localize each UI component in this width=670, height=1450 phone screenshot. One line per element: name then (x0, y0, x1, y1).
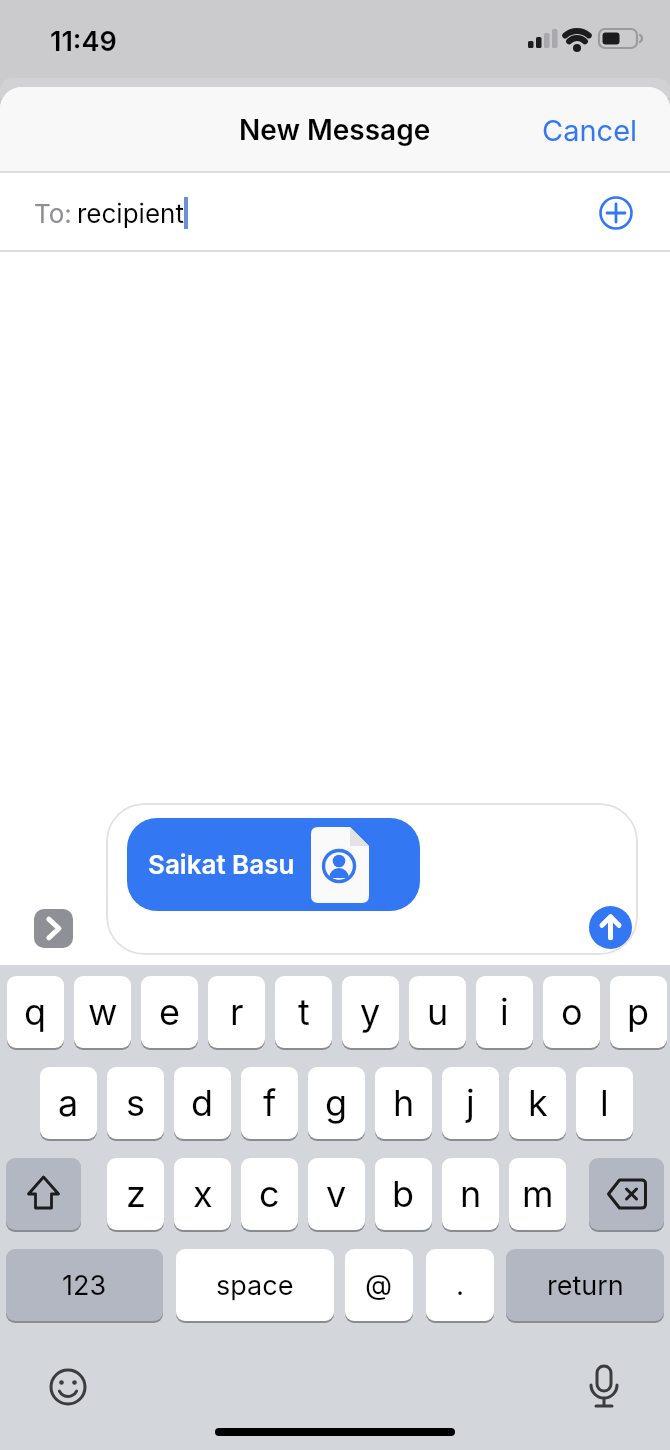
button[interactable]: w (74, 976, 131, 1048)
button[interactable]: y (342, 976, 399, 1048)
button[interactable]: h (375, 1067, 432, 1139)
button[interactable]: s (107, 1067, 164, 1139)
button[interactable]: z (107, 1158, 164, 1230)
staticText: y (360, 990, 381, 1034)
button[interactable]: space (176, 1249, 334, 1321)
staticText: 11:49 (50, 25, 117, 58)
staticText: s (126, 1081, 146, 1125)
staticText: l (600, 1081, 609, 1125)
staticText: space (216, 1269, 294, 1302)
staticText: a (58, 1081, 79, 1125)
button[interactable]: l (576, 1067, 633, 1139)
staticText: @ (365, 1268, 393, 1302)
staticText: 123 (62, 1269, 107, 1302)
button[interactable]: b (375, 1158, 432, 1230)
staticText: h (393, 1081, 415, 1125)
button[interactable]: d (174, 1067, 231, 1139)
button[interactable]: g (308, 1067, 365, 1139)
button[interactable]: t (275, 976, 332, 1048)
staticText: n (460, 1172, 482, 1216)
staticText: t (298, 990, 310, 1034)
button[interactable]: m (509, 1158, 566, 1230)
button[interactable]: k (509, 1067, 566, 1139)
staticText: f (263, 1081, 277, 1125)
staticText: . (456, 1268, 465, 1302)
button[interactable]: x (174, 1158, 231, 1230)
staticText: d (191, 1081, 214, 1125)
button[interactable]: n (442, 1158, 499, 1230)
button[interactable]: q (7, 976, 64, 1048)
button[interactable] (34, 909, 73, 948)
staticText: Saikat Basu (148, 849, 295, 880)
staticText: q (24, 990, 47, 1034)
staticText: r (230, 990, 244, 1034)
button[interactable]: r (208, 976, 265, 1048)
button[interactable]: a (40, 1067, 97, 1139)
button[interactable]: f (241, 1067, 298, 1139)
button[interactable]: p (610, 976, 667, 1048)
staticText: w (88, 990, 118, 1034)
button[interactable]: Saikat Basu (127, 818, 420, 911)
button[interactable]: To: (0, 173, 670, 252)
staticText: b (392, 1172, 415, 1216)
button[interactable] (50, 1369, 86, 1405)
staticText: Cancel (542, 113, 638, 148)
staticText: c (259, 1172, 280, 1216)
staticText: To: (34, 198, 72, 229)
button[interactable]: c (241, 1158, 298, 1230)
button[interactable] (589, 1158, 664, 1230)
staticText: g (325, 1081, 348, 1125)
staticText: j (466, 1081, 475, 1125)
staticText: v (326, 1172, 347, 1216)
button[interactable]: . (426, 1249, 494, 1321)
staticText: p (627, 990, 650, 1034)
button[interactable]: e (141, 976, 198, 1048)
button[interactable]: u (409, 976, 466, 1048)
staticText: New Message (239, 113, 431, 147)
staticText: m (522, 1172, 554, 1216)
staticText: i (500, 990, 509, 1034)
staticText: recipient (77, 198, 184, 229)
button[interactable]: Cancel (542, 113, 638, 148)
button[interactable] (6, 1158, 81, 1230)
button[interactable]: o (543, 976, 600, 1048)
staticText: e (159, 990, 180, 1034)
button[interactable]: 123 (6, 1249, 163, 1321)
button[interactable]: j (442, 1067, 499, 1139)
staticText: o (561, 990, 583, 1034)
button[interactable]: @ (345, 1249, 413, 1321)
staticText: k (528, 1081, 548, 1125)
button[interactable] (589, 906, 632, 949)
staticText: z (126, 1172, 146, 1216)
button[interactable]: v (308, 1158, 365, 1230)
button[interactable] (586, 1365, 622, 1409)
staticText: u (427, 990, 449, 1034)
button[interactable] (599, 196, 633, 230)
button[interactable]: return (506, 1249, 664, 1321)
button[interactable]: i (476, 976, 533, 1048)
staticText: x (193, 1172, 213, 1216)
staticText: return (547, 1269, 624, 1302)
